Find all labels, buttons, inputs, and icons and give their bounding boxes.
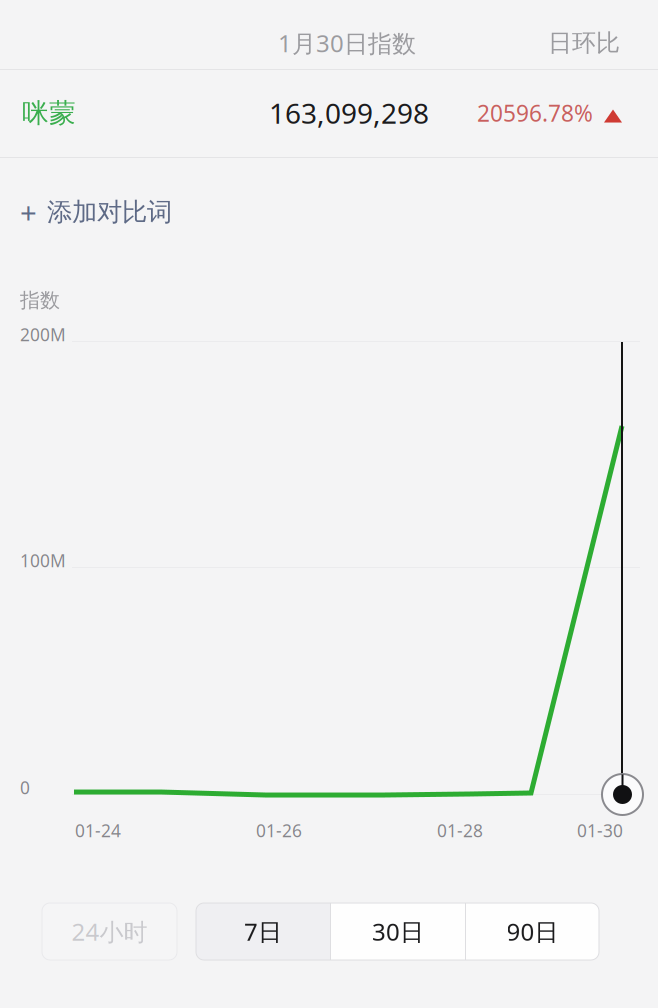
staticText: 7日 [244,916,282,947]
staticText: + [20,192,37,231]
staticText: 添加对比词 [47,196,172,227]
staticText: 01-30 [577,819,623,842]
staticText: 24小时 [71,916,147,947]
staticText: 1月30日指数 [278,27,416,59]
staticText: 日环比 [548,28,620,58]
staticText: 01-24 [75,819,121,842]
staticText: 163,099,298 [269,94,429,132]
staticText: 20596.78% [477,98,593,128]
staticText: 01-28 [437,819,483,842]
staticText: 30日 [372,916,424,947]
staticText: 指数 [20,288,60,313]
staticText: 90日 [506,916,558,947]
button[interactable]: 90日 [466,903,599,960]
button[interactable]: 7日 [196,903,330,960]
staticText: 咪蒙 [22,97,76,129]
button[interactable]: + [0,181,192,243]
staticText: 0 [20,776,30,799]
staticText: 200M [20,323,66,346]
staticText: 100M [20,549,66,572]
button[interactable]: 30日 [331,903,465,960]
button[interactable]: 24小时 [42,903,177,960]
staticText: 01-26 [256,819,302,842]
